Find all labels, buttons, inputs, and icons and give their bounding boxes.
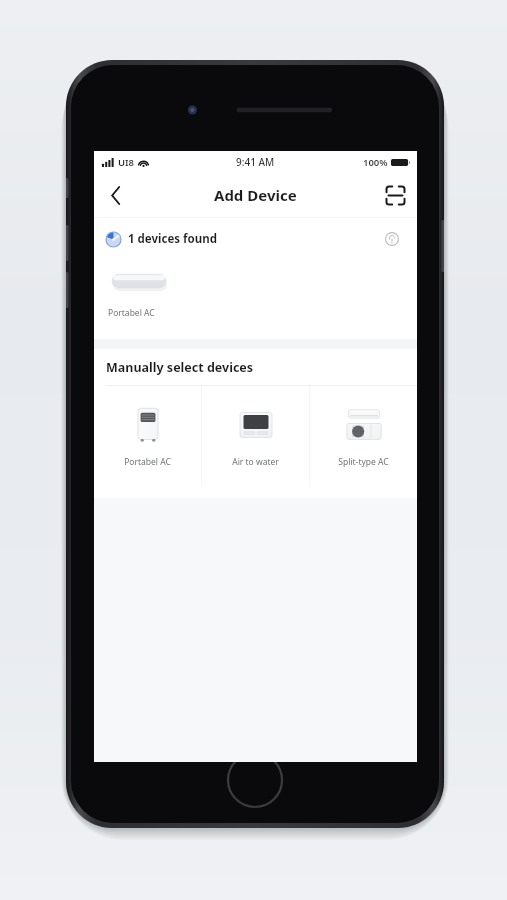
button[interactable]: Split-type AC	[310, 386, 417, 498]
staticText: Air to water	[232, 456, 279, 468]
staticText: UI8	[118, 156, 135, 169]
staticText: Manually select devices	[106, 359, 254, 376]
staticText: Split-type AC	[338, 456, 389, 468]
staticText: Portabel AC	[124, 456, 171, 468]
staticText: 100%	[363, 156, 388, 169]
button[interactable]: Help	[379, 226, 405, 252]
button[interactable]: Scan QR code	[373, 173, 417, 217]
button[interactable]: Portabel AC	[94, 386, 201, 498]
staticText: Add Device	[214, 185, 297, 205]
staticText: Portabel AC	[108, 307, 155, 319]
staticText: 1 devices found	[128, 231, 217, 247]
staticText: 9:41 AM	[236, 155, 275, 169]
button[interactable]: Back	[94, 173, 138, 217]
button[interactable]: Portabel AC	[108, 264, 417, 319]
button[interactable]: Air to water	[202, 386, 309, 498]
